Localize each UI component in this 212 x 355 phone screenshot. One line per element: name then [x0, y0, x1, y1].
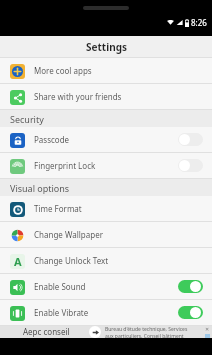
staticText: Change Unlock Text — [34, 255, 203, 266]
button[interactable]: Enable Vibrate — [0, 300, 212, 325]
button[interactable]: Change Wallpaper — [0, 222, 212, 247]
button[interactable]: Share with your friends — [0, 84, 212, 109]
button[interactable]: Toggle off — [178, 159, 203, 172]
button[interactable]: Aepc conseil — [0, 326, 212, 338]
staticText: ✕ — [205, 326, 210, 332]
button[interactable]: Fingerprint Lock — [0, 153, 212, 178]
staticText: 8:26 — [191, 17, 207, 28]
staticText: Enable Vibrate — [34, 307, 178, 318]
staticText: Fingerprint Lock — [34, 160, 178, 171]
staticText: Aepc conseil — [23, 326, 70, 337]
button[interactable]: Toggle on — [178, 306, 203, 319]
button[interactable]: Enable Sound — [0, 274, 212, 299]
staticText: More cool apps — [34, 65, 203, 76]
staticText: Passcode — [34, 134, 178, 145]
button[interactable]: Time Format — [0, 196, 212, 221]
staticText: Time Format — [34, 203, 203, 214]
button[interactable]: Toggle off — [178, 133, 203, 146]
staticText: Visual options — [10, 182, 70, 194]
button[interactable]: Toggle on — [178, 280, 203, 293]
staticText: Share with your friends — [34, 91, 203, 102]
button[interactable]: A — [0, 248, 212, 273]
staticText: Settings — [86, 40, 127, 54]
button[interactable]: Passcode — [0, 127, 212, 152]
staticText: aux particuliers, Conseil bâtiment — [105, 333, 184, 338]
staticText: Change Wallpaper — [34, 229, 203, 240]
button[interactable]: More cool apps — [0, 58, 212, 83]
staticText: Security — [10, 113, 44, 125]
staticText: A — [14, 254, 22, 269]
staticText: Bureau d'étude technique, Services — [105, 326, 188, 333]
button[interactable]: Open ad — [89, 326, 101, 338]
staticText: Enable Sound — [34, 281, 178, 292]
button[interactable]: Close ad — [204, 326, 210, 332]
